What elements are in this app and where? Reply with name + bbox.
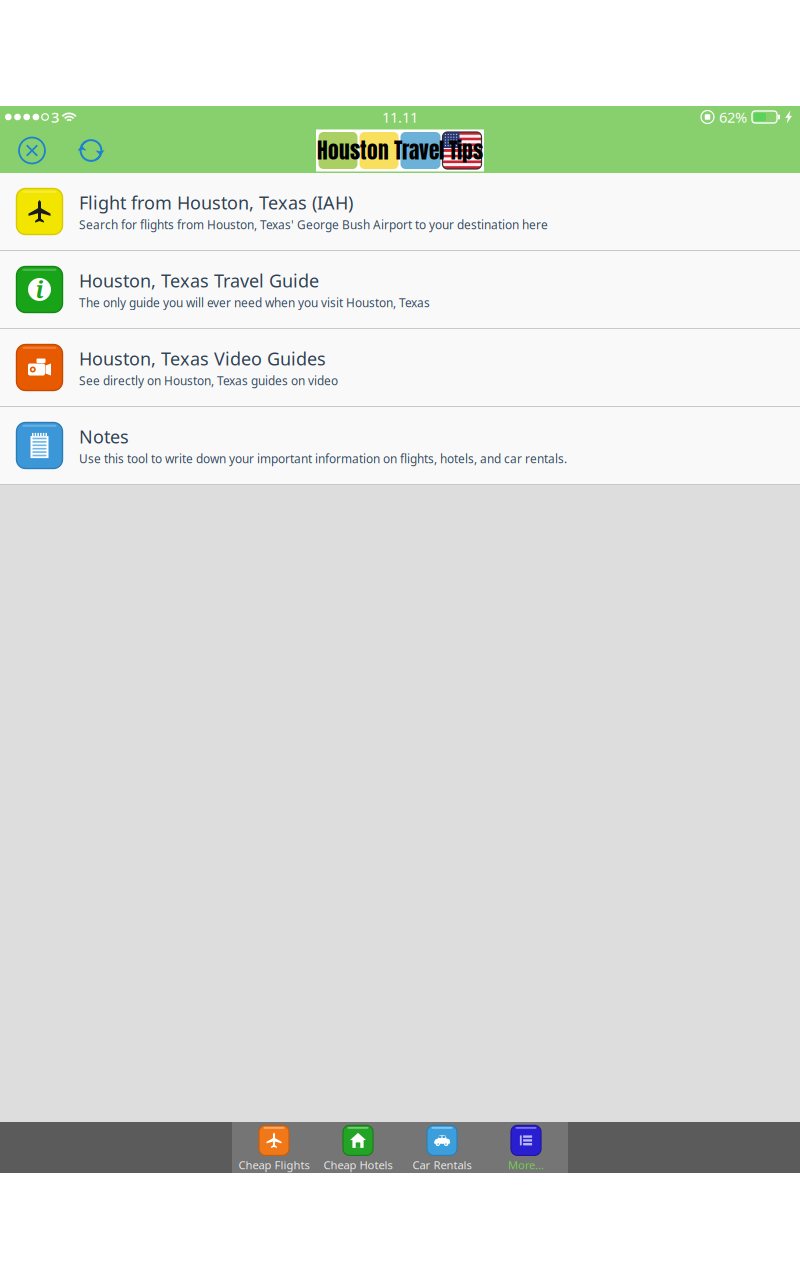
button[interactable]: i bbox=[0, 251, 800, 329]
staticText: Cheap Flights bbox=[238, 1157, 309, 1173]
staticText: Houston Travel Tips bbox=[317, 134, 483, 166]
staticText: Search for flights from Houston, Texas' … bbox=[79, 217, 548, 233]
button[interactable]: Close bbox=[0, 135, 47, 165]
button[interactable]: Refresh bbox=[47, 135, 106, 165]
staticText: 62% bbox=[719, 107, 747, 127]
staticText: 3 bbox=[51, 107, 59, 127]
staticText: Cheap Hotels bbox=[323, 1157, 392, 1173]
staticText: Notes bbox=[79, 424, 129, 449]
staticText: Flight from Houston, Texas (IAH) bbox=[79, 190, 353, 215]
button[interactable]: Cheap Hotels bbox=[316, 1122, 400, 1173]
staticText: The only guide you will ever need when y… bbox=[79, 295, 430, 311]
button[interactable]: Notes bbox=[0, 407, 800, 485]
staticText: Houston, Texas Video Guides bbox=[79, 346, 326, 371]
staticText: Houston, Texas Travel Guide bbox=[79, 268, 319, 293]
staticText: 11.11 bbox=[382, 107, 418, 127]
button[interactable]: Houston, Texas Video Guides bbox=[0, 329, 800, 407]
button[interactable]: Cheap Flights bbox=[232, 1122, 316, 1173]
staticText: More... bbox=[508, 1157, 544, 1173]
staticText: Use this tool to write down your importa… bbox=[79, 451, 567, 467]
button[interactable]: Flight from Houston, Texas (IAH) bbox=[0, 173, 800, 251]
staticText: i bbox=[35, 274, 43, 305]
button[interactable]: More... bbox=[484, 1122, 568, 1173]
staticText: See directly on Houston, Texas guides on… bbox=[79, 373, 338, 389]
staticText: Car Rentals bbox=[412, 1157, 471, 1173]
button[interactable]: Car Rentals bbox=[400, 1122, 484, 1173]
